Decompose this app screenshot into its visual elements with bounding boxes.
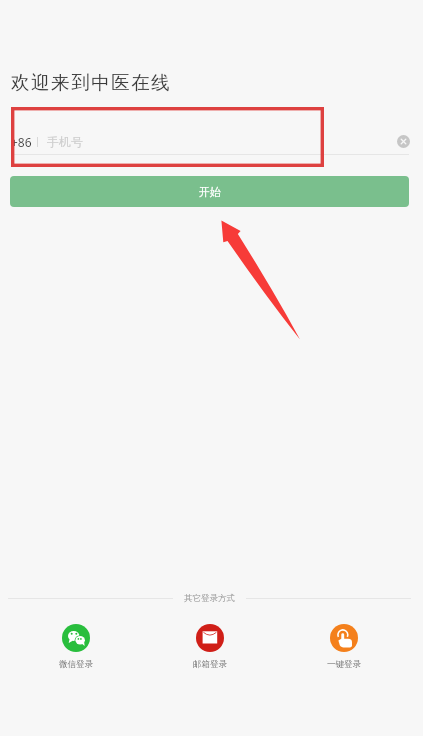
- staticText: 开始: [199, 185, 221, 199]
- staticText: 其它登录方式: [184, 593, 235, 604]
- staticText: 欢迎来到中医在线: [11, 71, 172, 94]
- button[interactable]: Clear text: [397, 135, 410, 148]
- staticText: 微信登录: [59, 659, 93, 670]
- button[interactable]: +86: [11, 128, 410, 155]
- button[interactable]: 一键登录: [309, 624, 379, 670]
- staticText: 一键登录: [327, 659, 361, 670]
- button[interactable]: 微信登录: [41, 624, 111, 670]
- button[interactable]: 开始: [10, 176, 409, 207]
- staticText: 手机号: [47, 134, 83, 149]
- button[interactable]: 邮箱登录: [175, 624, 245, 670]
- staticText: 邮箱登录: [193, 659, 227, 670]
- staticText: +86: [11, 134, 32, 150]
